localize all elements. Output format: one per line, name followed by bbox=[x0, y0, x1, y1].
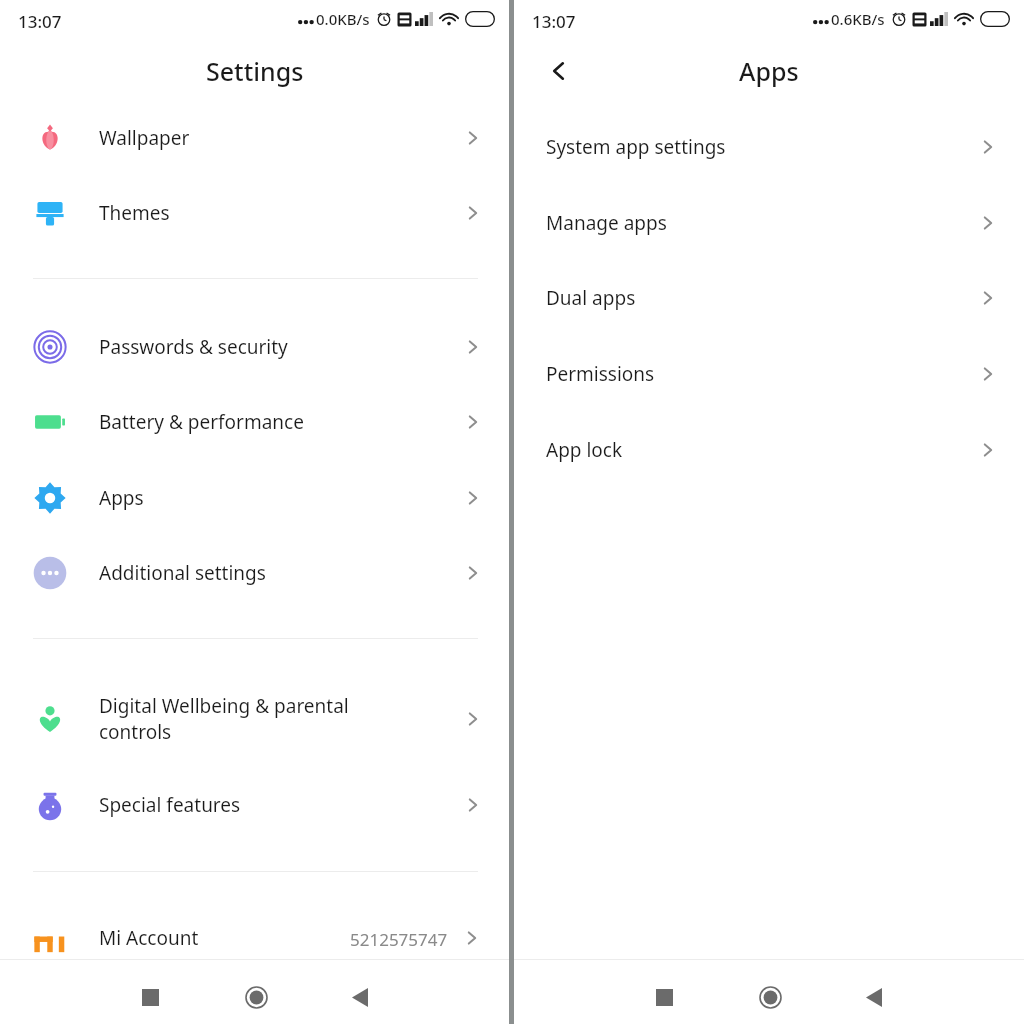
staticText: Permissions bbox=[546, 361, 655, 387]
staticText: Wallpaper bbox=[99, 125, 190, 151]
staticText: 0.6KB/s bbox=[831, 9, 885, 29]
staticText: Settings bbox=[206, 54, 304, 88]
staticText: App lock bbox=[546, 437, 623, 463]
staticText: Apps bbox=[739, 54, 799, 88]
button[interactable]: System app settings bbox=[514, 118, 1024, 176]
button[interactable]: Apps bbox=[0, 470, 509, 526]
button[interactable]: Manage apps bbox=[514, 194, 1024, 252]
button[interactable]: Passwords & security bbox=[0, 319, 509, 375]
button[interactable]: Battery & performance bbox=[0, 394, 509, 450]
staticText: System app settings bbox=[546, 134, 726, 160]
button[interactable]: Recent apps bbox=[642, 975, 686, 1019]
staticText: 5212575747 bbox=[350, 928, 448, 951]
button[interactable]: Back bbox=[852, 975, 896, 1019]
button[interactable]: Home bbox=[748, 975, 792, 1019]
button[interactable]: App lock bbox=[514, 421, 1024, 479]
button[interactable]: Special features bbox=[0, 777, 509, 833]
staticText: 13:07 bbox=[532, 10, 576, 33]
button[interactable]: Dual apps bbox=[514, 269, 1024, 327]
button[interactable]: Back bbox=[536, 48, 582, 94]
button[interactable]: Mi Account bbox=[0, 912, 509, 959]
staticText: Additional settings bbox=[99, 560, 266, 586]
staticText: 13:07 bbox=[18, 10, 62, 33]
button[interactable]: Recent apps bbox=[128, 975, 172, 1019]
button[interactable]: Permissions bbox=[514, 345, 1024, 403]
staticText: Themes bbox=[99, 200, 170, 226]
staticText: Digital Wellbeing & parental controls bbox=[99, 693, 349, 745]
staticText: Manage apps bbox=[546, 210, 667, 236]
button[interactable]: Additional settings bbox=[0, 545, 509, 601]
button[interactable]: Themes bbox=[0, 185, 509, 241]
staticText: 0.0KB/s bbox=[316, 9, 370, 29]
button[interactable]: Home bbox=[234, 975, 278, 1019]
staticText: Battery & performance bbox=[99, 409, 304, 435]
staticText: Dual apps bbox=[546, 285, 636, 311]
staticText: Special features bbox=[99, 792, 241, 818]
button[interactable]: Back bbox=[338, 975, 382, 1019]
staticText: Mi Account bbox=[99, 925, 199, 951]
button[interactable]: Wallpaper bbox=[0, 110, 509, 166]
button[interactable]: Digital Wellbeing & parental controls bbox=[0, 684, 509, 754]
staticText: Apps bbox=[99, 485, 144, 511]
staticText: Passwords & security bbox=[99, 334, 288, 360]
